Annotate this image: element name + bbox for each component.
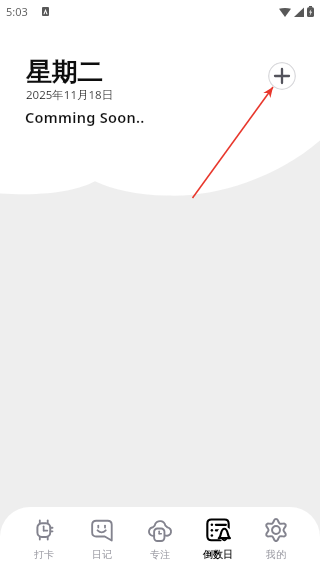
- button[interactable]: 专注: [131, 507, 189, 568]
- button[interactable]: 倒数日: [189, 507, 247, 568]
- staticText: 倒数日: [203, 548, 233, 561]
- staticText: 专注: [150, 548, 170, 561]
- staticText: 我的: [266, 548, 286, 561]
- staticText: 星期二: [26, 56, 103, 88]
- staticText: 打卡: [34, 548, 54, 561]
- button[interactable]: 打卡: [15, 507, 73, 568]
- button[interactable]: 我的: [247, 507, 305, 568]
- staticText: Comming Soon..: [25, 107, 145, 127]
- staticText: 5:03: [6, 4, 28, 19]
- staticText: 2025年11月18日: [26, 87, 114, 103]
- staticText: 日记: [92, 548, 112, 561]
- button[interactable]: Add countdown: [268, 62, 296, 90]
- button[interactable]: 日记: [73, 507, 131, 568]
